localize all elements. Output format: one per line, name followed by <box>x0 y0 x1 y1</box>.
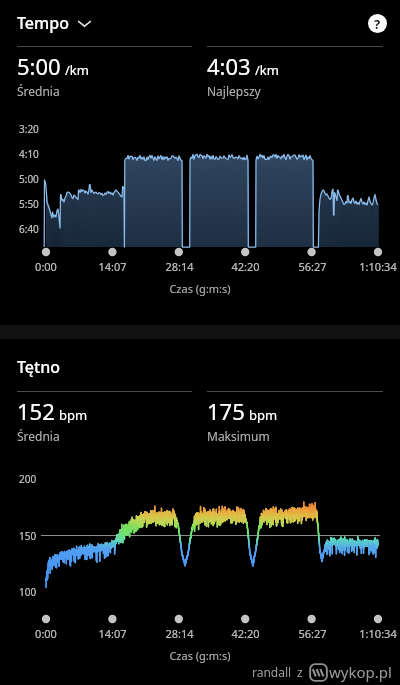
staticText: 42:20 <box>231 259 260 274</box>
button[interactable]: Tętno <box>17 352 60 382</box>
staticText: randall <box>252 664 292 680</box>
staticText: 28:14 <box>165 259 194 274</box>
staticText: 56:27 <box>298 626 327 641</box>
staticText: Maksimum <box>207 428 270 444</box>
staticText: 5:50 <box>19 197 39 211</box>
staticText: ? <box>374 15 381 33</box>
button[interactable]: 4:03 <box>207 46 383 99</box>
staticText: 3:20 <box>19 122 39 136</box>
button[interactable]: 5:00 <box>17 46 192 99</box>
staticText: 1:10:34 <box>359 626 397 641</box>
staticText: 100 <box>19 585 37 599</box>
button[interactable]: 152 <box>17 391 192 444</box>
button[interactable]: Help <box>368 14 387 33</box>
staticText: 1:10:34 <box>359 259 397 274</box>
staticText: z <box>297 664 303 680</box>
staticText: 0:00 <box>35 626 57 641</box>
staticText: 14:07 <box>98 626 127 641</box>
staticText: 6:40 <box>19 222 39 236</box>
staticText: wykop.pl <box>329 662 392 682</box>
staticText: 175 <box>207 396 245 426</box>
staticText: Czas (g:m:s) <box>0 281 400 296</box>
button[interactable]: Tempo <box>17 8 92 38</box>
staticText: Tętno <box>17 356 60 378</box>
staticText: 0:00 <box>35 259 57 274</box>
staticText: /km <box>65 61 89 79</box>
staticText: 5:00 <box>17 51 61 81</box>
staticText: 4:10 <box>19 147 39 161</box>
staticText: Czas (g:m:s) <box>0 648 400 663</box>
staticText: 200 <box>19 472 37 486</box>
staticText: 14:07 <box>98 259 127 274</box>
staticText: Tempo <box>17 12 69 34</box>
staticText: Średnia <box>17 83 60 99</box>
button[interactable]: 175 <box>207 391 383 444</box>
staticText: 5:00 <box>19 172 39 186</box>
staticText: bpm <box>59 406 88 424</box>
staticText: 56:27 <box>298 259 327 274</box>
staticText: Średnia <box>17 428 60 444</box>
staticText: Najlepszy <box>207 83 261 99</box>
staticText: 4:03 <box>207 51 251 81</box>
staticText: bpm <box>249 406 278 424</box>
staticText: 28:14 <box>165 626 194 641</box>
staticText: 150 <box>19 529 37 543</box>
staticText: 152 <box>17 396 55 426</box>
staticText: 42:20 <box>231 626 260 641</box>
staticText: /km <box>255 61 279 79</box>
